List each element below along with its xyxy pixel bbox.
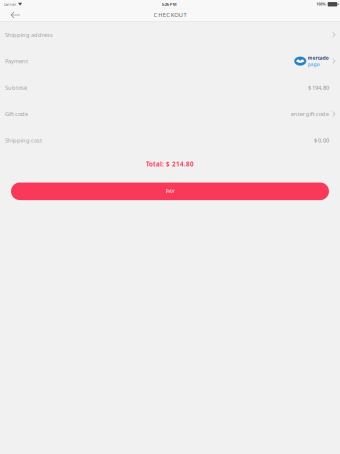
staticText: mercado — [308, 55, 329, 61]
button[interactable]: Back — [0, 8, 26, 21]
button[interactable]: Shipping cost — [0, 127, 340, 153]
staticText: Shipping address — [5, 31, 53, 39]
staticText: pago — [308, 61, 320, 68]
staticText: Carrier — [3, 2, 16, 7]
button[interactable]: Subtotal — [0, 74, 340, 101]
button[interactable]: PAY — [11, 182, 329, 200]
button[interactable]: Shipping address — [0, 21, 340, 48]
staticText: Subtotal — [5, 84, 27, 91]
staticText: 5:26 PM — [162, 1, 177, 7]
staticText: 100% — [316, 2, 325, 7]
staticText: enter gift code — [291, 110, 329, 118]
staticText: Payment — [5, 57, 28, 65]
staticText: CHECKOUT — [154, 11, 186, 19]
staticText: Total: $ 214.80 — [146, 160, 194, 168]
staticText: Gift code — [5, 110, 28, 118]
button[interactable]: Payment — [0, 48, 340, 74]
staticText: Shipping cost — [5, 136, 42, 144]
staticText: $ 194.80 — [308, 84, 329, 91]
staticText: PAY — [165, 187, 174, 195]
button[interactable]: Gift code — [0, 101, 340, 127]
staticText: $ 0.00 — [314, 136, 329, 144]
